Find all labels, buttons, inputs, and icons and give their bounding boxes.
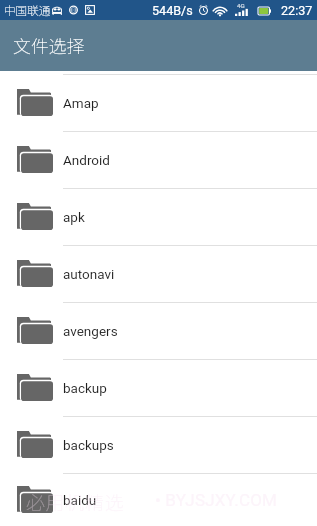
staticText: backup bbox=[63, 380, 107, 396]
button[interactable]: apk bbox=[0, 189, 317, 246]
staticText: Amap bbox=[63, 95, 99, 111]
staticText: • BYJSJXY.COM bbox=[155, 490, 278, 510]
button[interactable]: backups bbox=[0, 417, 317, 474]
staticText: 必用机精选 bbox=[26, 488, 125, 516]
staticText: 544B/s bbox=[152, 3, 193, 18]
button[interactable]: baidu bbox=[0, 474, 317, 526]
staticText: Android bbox=[63, 152, 110, 168]
staticText: backups bbox=[63, 437, 114, 453]
staticText: baidu bbox=[63, 492, 97, 508]
button[interactable]: backup bbox=[0, 360, 317, 417]
button[interactable]: autonavi bbox=[0, 246, 317, 303]
staticText: autonavi bbox=[63, 266, 115, 282]
staticText: 文件选择 bbox=[13, 32, 85, 58]
staticText: 4G bbox=[237, 2, 245, 9]
staticText: avengers bbox=[63, 323, 118, 339]
button[interactable]: avengers bbox=[0, 303, 317, 360]
button[interactable]: Android bbox=[0, 132, 317, 189]
staticText: 22:37 bbox=[281, 3, 313, 18]
staticText: apk bbox=[63, 209, 85, 225]
staticText: 中国联通 bbox=[4, 2, 51, 19]
button[interactable]: Amap bbox=[0, 75, 317, 132]
